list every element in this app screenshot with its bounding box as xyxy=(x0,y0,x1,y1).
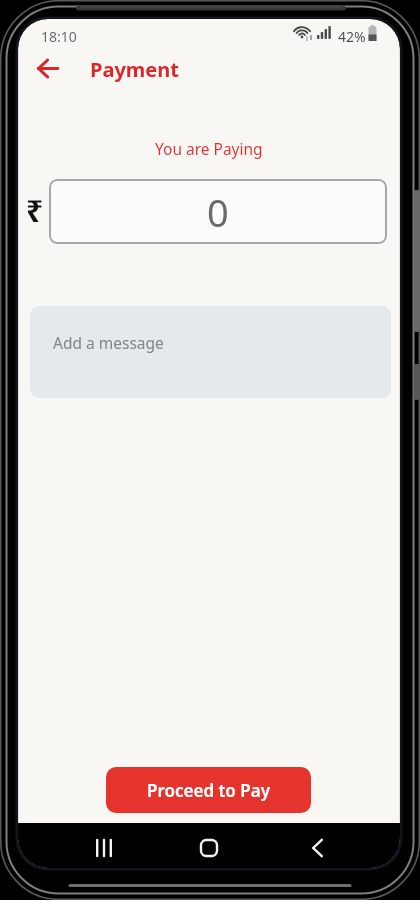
button[interactable] xyxy=(301,832,333,864)
button[interactable] xyxy=(88,832,120,864)
staticText: 18:10 xyxy=(41,27,77,46)
staticText: You are Paying xyxy=(155,138,263,159)
button[interactable]: Proceed to Pay xyxy=(106,767,311,813)
staticText: Proceed to Pay xyxy=(147,779,270,802)
button[interactable]: 0 xyxy=(49,179,387,244)
button[interactable] xyxy=(32,52,64,84)
button[interactable]: Add a message xyxy=(30,306,391,398)
staticText: Add a message xyxy=(53,332,164,353)
button[interactable] xyxy=(193,832,225,864)
staticText: 0 xyxy=(207,186,229,238)
staticText: ₹ xyxy=(26,190,44,231)
staticText: Payment xyxy=(90,56,179,83)
staticText: 42% xyxy=(338,27,366,46)
